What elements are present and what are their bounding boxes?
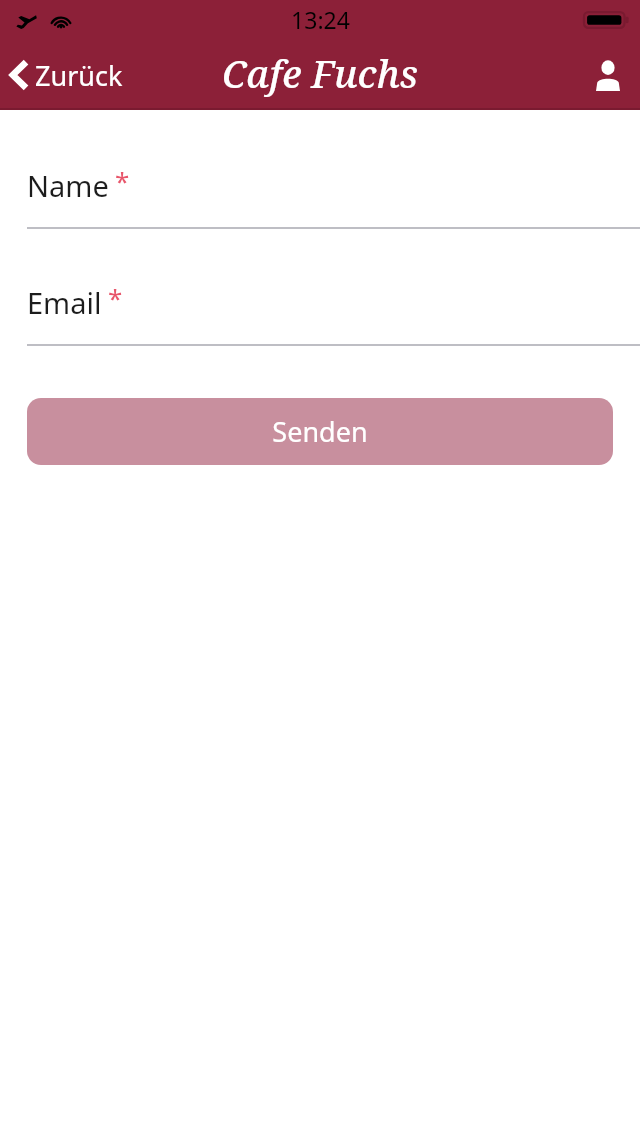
staticText: Cafe Fuchs: [222, 47, 418, 99]
button[interactable]: Zurück: [0, 40, 135, 110]
staticText: *: [115, 163, 130, 198]
button[interactable]: Email: [0, 283, 640, 322]
staticText: Email: [27, 283, 102, 322]
button[interactable]: Senden: [27, 398, 613, 465]
staticText: *: [108, 280, 123, 315]
staticText: Senden: [272, 413, 368, 450]
staticText: Name: [27, 166, 109, 205]
staticText: Zurück: [35, 57, 123, 94]
button[interactable]: Account: [576, 40, 640, 110]
staticText: 13:24: [291, 4, 350, 35]
button[interactable]: Name: [0, 166, 640, 205]
